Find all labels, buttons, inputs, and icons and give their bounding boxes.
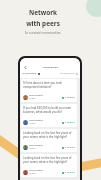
button[interactable]: My Questions	[60, 72, 78, 75]
staticText: 2d ago	[29, 122, 36, 125]
button[interactable]: If you had $40,000 to build your own bus…	[21, 104, 77, 127]
staticText: 3 Replies	[65, 121, 75, 124]
button[interactable]: Tell me about a time you took unexpected…	[21, 79, 77, 102]
staticText: Tina Stevens	[29, 144, 43, 147]
button[interactable]: Looking back on the last five years of y…	[21, 154, 77, 177]
staticText: Looking back on the last five years of y…	[23, 156, 75, 163]
staticText: Tina Stevens	[29, 119, 43, 122]
staticText: In curated communities	[25, 31, 61, 35]
staticText: Tell me about a time you took unexpected…	[23, 81, 75, 88]
staticText: Network with peers	[26, 8, 60, 28]
staticText: If you had $40,000 to build your own bus…	[23, 106, 75, 113]
button[interactable]: Looking back on the last five years of y…	[21, 129, 77, 152]
staticText: 3 Replies	[65, 146, 75, 149]
button[interactable]: 3 Replies	[62, 96, 75, 99]
staticText: All Questions	[22, 72, 37, 75]
staticText: Tina Stevens	[29, 94, 43, 97]
staticText: 3 Replies	[65, 171, 75, 174]
button[interactable]: 3 Replies	[62, 171, 75, 174]
staticText: 2d ago	[29, 172, 36, 175]
staticText: 3 Replies	[65, 96, 75, 99]
button[interactable]: 3 Replies	[62, 146, 75, 149]
button[interactable]: 3 Replies	[62, 121, 75, 124]
staticText: Looking back on the last five years of y…	[23, 131, 75, 138]
button[interactable]: All Questions	[22, 72, 40, 75]
staticText: 2d ago	[29, 97, 36, 100]
staticText: Tina Stevens	[29, 169, 43, 172]
button[interactable]: Back	[22, 64, 28, 70]
staticText: 2d ago	[29, 147, 36, 150]
staticText: Shared Rooms	[43, 66, 58, 69]
staticText: My Questions	[60, 72, 75, 75]
